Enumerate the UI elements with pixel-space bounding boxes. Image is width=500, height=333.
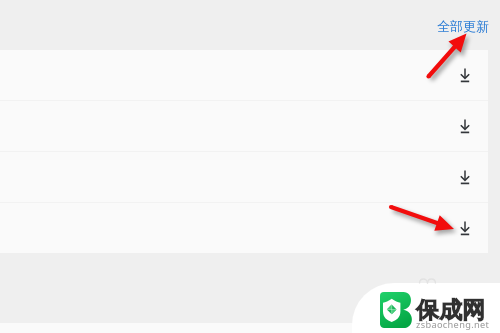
staticText: 全部更新	[437, 18, 489, 34]
button[interactable]: Download	[450, 213, 480, 243]
button[interactable]: Download	[450, 162, 480, 192]
button[interactable]: Download	[0, 203, 488, 253]
button[interactable]: Download	[0, 101, 488, 151]
button[interactable]: Download	[0, 50, 488, 100]
staticText: zsbaocheng.net	[416, 318, 490, 331]
button[interactable]: Download	[450, 111, 480, 141]
button[interactable]: 全部更新	[437, 18, 489, 34]
button[interactable]: Download	[0, 152, 488, 202]
button[interactable]: Download	[450, 60, 480, 90]
staticText: 保成网	[416, 296, 485, 325]
